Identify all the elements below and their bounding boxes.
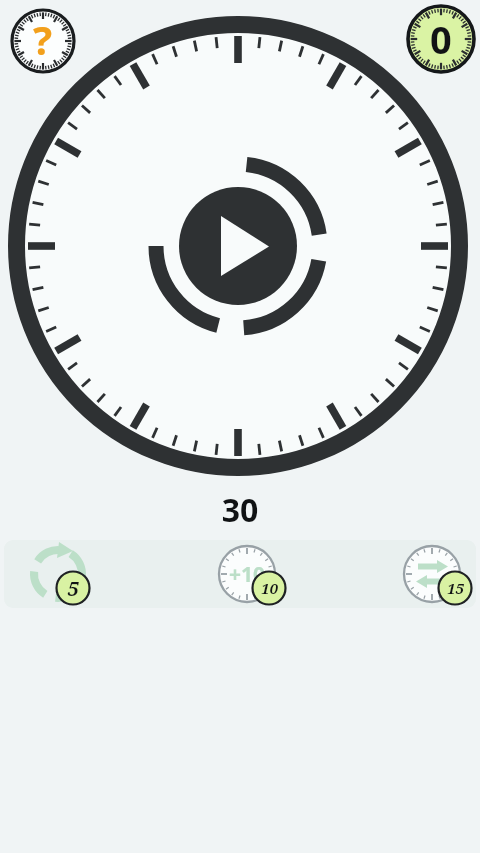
staticText: 0 — [430, 13, 452, 65]
button[interactable]: Elapsed laps 0 — [404, 2, 478, 76]
staticText: 5 — [67, 575, 79, 602]
staticText: 30 — [0, 488, 480, 532]
staticText: ? — [33, 12, 53, 66]
button[interactable]: Reset timer, 5 minutes — [26, 542, 90, 606]
staticText: +10 — [229, 560, 266, 589]
staticText: 15 — [447, 578, 464, 598]
button[interactable]: Unknown duration — [8, 6, 78, 76]
button[interactable]: Add 10 minutes — [215, 542, 279, 606]
staticText: 10 — [261, 578, 278, 598]
button[interactable]: Start timer — [7, 15, 469, 477]
button[interactable]: Swap durations, 15 minutes — [400, 542, 464, 606]
